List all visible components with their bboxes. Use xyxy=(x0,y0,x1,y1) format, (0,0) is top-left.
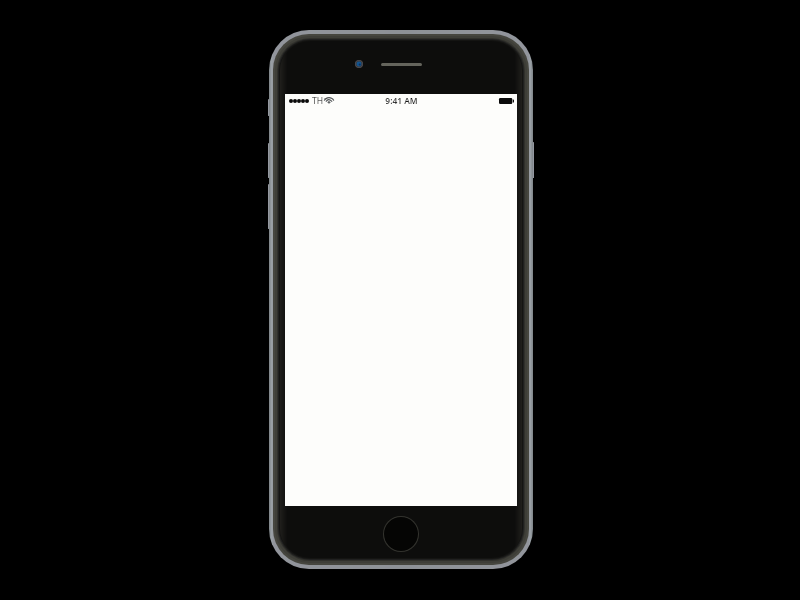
staticText: TH xyxy=(312,95,324,107)
button[interactable]: Home xyxy=(384,517,418,551)
staticText: 9:41 AM xyxy=(385,95,418,106)
button[interactable]: Volume down xyxy=(268,184,269,229)
button[interactable]: Volume up xyxy=(268,143,269,178)
button[interactable]: Sleep wake xyxy=(532,142,534,178)
button[interactable]: Ring silent switch xyxy=(268,99,269,116)
